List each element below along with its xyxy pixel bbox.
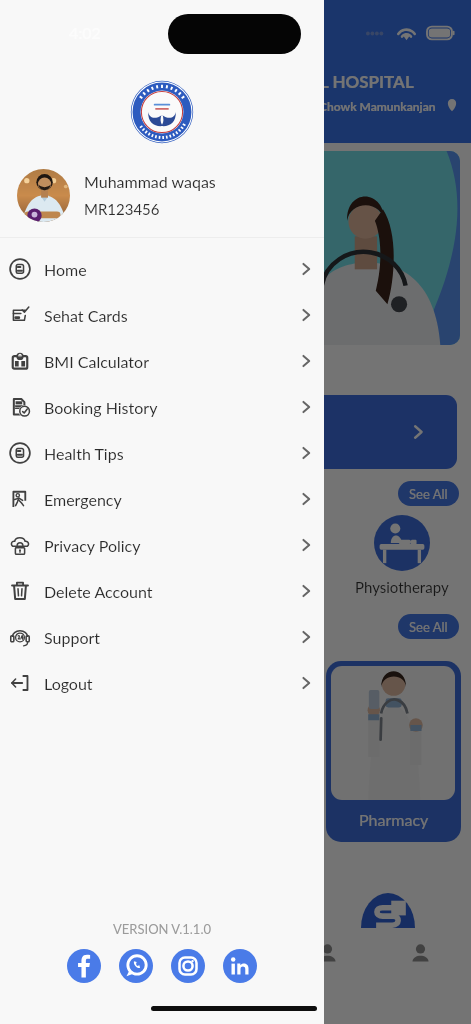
staticText: Cardiology (34, 578, 105, 596)
button[interactable]: Booking History (0, 384, 324, 430)
staticText: Physiotherapy (355, 578, 449, 596)
button[interactable]: Cardiology (16, 515, 122, 596)
button[interactable]: Profile (403, 936, 437, 970)
staticText: Health Tips (44, 444, 124, 463)
staticText: Logout (44, 674, 93, 693)
button[interactable]: Radiology (127, 515, 233, 596)
button[interactable]: See All (398, 481, 459, 506)
staticText: Home (44, 260, 87, 279)
staticText: Radiology (148, 578, 213, 596)
button[interactable]: Support (0, 614, 324, 660)
staticText: Emergency (44, 490, 122, 509)
button[interactable]: See All (398, 614, 459, 639)
staticText: Muhammad waqas (84, 172, 216, 191)
button[interactable]: Labs (11, 661, 146, 842)
other: Hospital logo (361, 893, 415, 928)
other: Physiotherapy (374, 515, 430, 571)
button[interactable]: Sehat Cards (0, 292, 324, 338)
button[interactable]: Logout (0, 660, 324, 706)
button[interactable]: Search (218, 936, 252, 970)
other: Location (445, 98, 459, 119)
button[interactable]: Privacy Policy (0, 522, 324, 568)
staticText: Surgery (266, 578, 317, 596)
staticText: BMI Calculator (44, 352, 149, 371)
other: Surgery (263, 515, 319, 571)
button[interactable]: Delete Account (0, 568, 324, 614)
button[interactable]: BMI Calculator (0, 338, 324, 384)
staticText: Privacy Policy (44, 536, 141, 555)
button[interactable]: Pharmacy (326, 661, 461, 842)
button[interactable]: Muhammad waqas (0, 162, 324, 228)
button[interactable]: Reports (310, 936, 344, 970)
staticText: Booking History (44, 398, 158, 417)
staticText: Gojra Road Chowk Mamunkanjan (257, 99, 436, 113)
button[interactable]: Instagram (171, 949, 205, 983)
staticText: See All (409, 619, 448, 635)
staticText: See All (409, 486, 448, 502)
staticText: MR123456 (84, 200, 160, 218)
button[interactable]: Emergency (0, 476, 324, 522)
staticText: Sehat Cards (44, 306, 128, 325)
other: Cardiology (41, 515, 97, 571)
staticText: VERSION V.1.1.0 (0, 921, 324, 937)
button[interactable] (12, 395, 457, 469)
button[interactable]: Home (0, 246, 324, 292)
staticText: Our Departments (16, 484, 140, 503)
button[interactable] (12, 151, 460, 345)
staticText: Our Services (16, 617, 106, 636)
staticText: Support (44, 628, 101, 647)
button[interactable]: LinkedIn (223, 949, 257, 983)
staticText: Delete Account (44, 582, 153, 601)
button[interactable]: Appointments (125, 936, 159, 970)
button[interactable]: WhatsApp (119, 949, 153, 983)
button[interactable]: Surgery (238, 515, 344, 596)
staticText: AYESHA AMIR MEMORIAL HOSPITAL (120, 71, 414, 91)
button[interactable]: Facebook (67, 949, 101, 983)
button[interactable]: Physiotherapy (349, 515, 455, 596)
staticText: Pharmacy (359, 810, 429, 829)
button[interactable]: Health Tips (0, 430, 324, 476)
